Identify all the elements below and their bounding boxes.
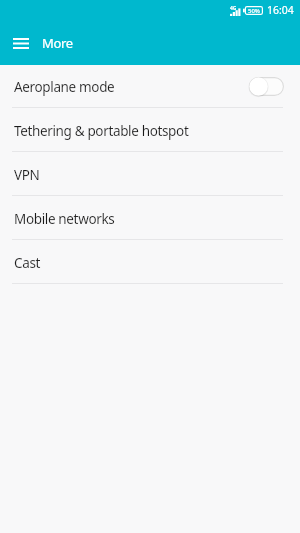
staticText: 50% [248,7,260,15]
staticText: Tethering & portable hotspot [14,122,189,140]
button[interactable]: Aeroplane mode [0,65,300,108]
staticText: Cast [14,254,41,272]
staticText: More [42,34,73,52]
button[interactable]: Open navigation menu [0,20,41,65]
staticText: Mobile networks [14,210,115,228]
button[interactable]: Mobile networks [0,196,300,240]
staticText: 16:04 [267,3,294,17]
button[interactable]: VPN [0,152,300,196]
staticText: Aeroplane mode [14,78,115,96]
button[interactable]: Tethering & portable hotspot [0,108,300,152]
staticText: VPN [14,166,40,184]
button[interactable]: Aeroplane mode off [249,77,284,96]
button[interactable]: Cast [0,240,300,284]
staticText: 4G [230,5,237,12]
